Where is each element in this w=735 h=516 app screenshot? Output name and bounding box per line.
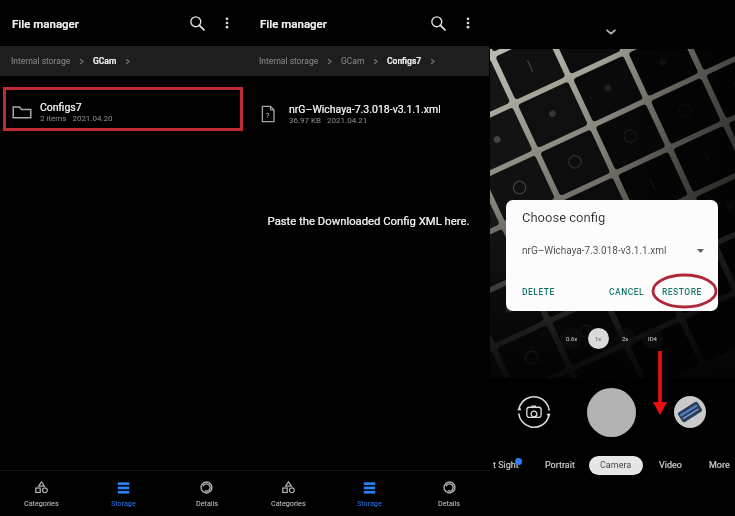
staticText: 0.6x (566, 335, 578, 342)
staticText: ID4 (648, 335, 657, 342)
staticText: GCam (341, 56, 365, 66)
button[interactable]: Portrait (545, 460, 575, 471)
staticText: ? (266, 112, 270, 120)
button[interactable]: Video (659, 460, 682, 471)
button[interactable]: 1x (588, 328, 609, 349)
staticText: 1x (595, 335, 602, 342)
button[interactable]: 2x (615, 328, 636, 349)
button[interactable]: More options (455, 10, 481, 36)
staticText: Camera (600, 460, 632, 471)
button[interactable]: More options (214, 10, 240, 36)
staticText: nrG–Wichaya-7.3.018-v3.1.1.xml (289, 103, 441, 115)
button[interactable]: 0.6x (561, 328, 582, 349)
staticText: GCam (93, 56, 117, 66)
button[interactable]: Storage (329, 471, 409, 516)
staticText: Details (196, 499, 218, 507)
button[interactable]: Categories (248, 471, 329, 516)
staticText: Storage (111, 499, 136, 507)
staticText: 2 items 2021.04.20 (40, 114, 113, 123)
button[interactable]: Camera (589, 456, 643, 475)
staticText: Details (438, 499, 460, 507)
button[interactable]: RESTORE (662, 287, 702, 297)
staticText: File manager (12, 17, 79, 30)
staticText: Internal storage (259, 56, 319, 66)
staticText: Categories (24, 499, 59, 507)
staticText: File manager (260, 17, 327, 30)
button[interactable]: Gallery (674, 396, 706, 428)
staticText: Internal storage (11, 56, 71, 66)
staticText: Categories (271, 499, 306, 507)
staticText: Paste the Downloaded Config XML here. (248, 215, 489, 228)
button[interactable]: Storage (82, 471, 165, 516)
button[interactable]: ID4 (642, 328, 663, 349)
button[interactable]: CANCEL (609, 287, 645, 297)
button[interactable]: Switch camera (517, 395, 551, 429)
staticText: Choose config (522, 210, 606, 225)
button[interactable]: Search (425, 10, 451, 36)
button[interactable]: Categories (0, 471, 82, 516)
button[interactable]: ? (248, 90, 489, 137)
button[interactable]: Search (184, 10, 210, 36)
button[interactable]: Shutter (587, 388, 636, 437)
staticText: 2x (622, 335, 629, 342)
staticText: Storage (357, 499, 382, 507)
button[interactable]: Configs7 (3, 87, 243, 131)
staticText: 36.97 KB 2021.04.21 (289, 116, 368, 125)
staticText: nrG–Wichaya-7.3.018-v3.1.1.xml (522, 245, 667, 257)
staticText: Configs7 (40, 101, 82, 113)
button[interactable]: Expand settings (604, 25, 618, 39)
button[interactable]: Details (409, 471, 489, 516)
button[interactable]: t Sight (493, 460, 519, 471)
staticText: Configs7 (387, 56, 422, 66)
button[interactable]: Details (165, 471, 248, 516)
button[interactable]: More (709, 460, 730, 471)
button[interactable]: DELETE (522, 287, 555, 297)
